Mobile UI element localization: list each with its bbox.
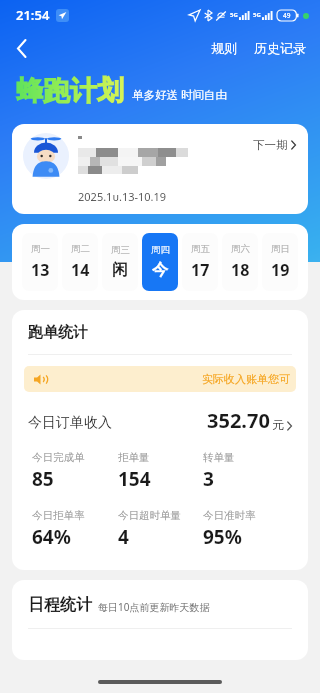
- staticText: 日程统计: [28, 595, 92, 615]
- button[interactable]: 周三: [102, 233, 138, 291]
- staticText: 周五: [191, 243, 210, 255]
- staticText: 转单量: [203, 451, 235, 464]
- staticText: 历史记录: [254, 40, 306, 56]
- staticText: 49: [283, 11, 291, 20]
- staticText: 13: [31, 259, 50, 281]
- button[interactable]: Back: [4, 30, 40, 66]
- staticText: 17: [191, 259, 210, 281]
- staticText: 21:54: [16, 6, 50, 24]
- button[interactable]: 今日订单收入: [28, 407, 292, 434]
- button[interactable]: 2025.1ᴜ.13-10.19: [12, 124, 308, 214]
- staticText: 今日完成单: [32, 451, 85, 464]
- staticText: 5G: [230, 11, 238, 19]
- button[interactable]: 下一期: [250, 135, 299, 155]
- staticText: 14: [71, 259, 90, 281]
- staticText: 跑单统计: [28, 323, 88, 342]
- staticText: 85: [32, 466, 54, 492]
- staticText: 18: [231, 259, 250, 281]
- staticText: 今日准时率: [203, 509, 256, 522]
- staticText: 元: [272, 417, 284, 432]
- staticText: 今日订单收入: [28, 414, 112, 432]
- staticText: 今日拒单率: [32, 509, 85, 522]
- staticText: 周一: [31, 243, 50, 255]
- staticText: 周二: [71, 243, 90, 255]
- staticText: 5G: [253, 11, 261, 19]
- staticText: 单多好送 时间自由: [132, 87, 227, 103]
- button[interactable]: 实际收入账单您可: [24, 366, 296, 392]
- button[interactable]: 周五: [182, 233, 218, 291]
- staticText: 95%: [203, 524, 242, 550]
- button[interactable]: 周二: [62, 233, 98, 291]
- staticText: 周日: [271, 243, 290, 255]
- staticText: 规则: [211, 40, 237, 56]
- button[interactable]: 周四: [142, 233, 178, 291]
- staticText: 实际收入账单您可: [202, 372, 290, 386]
- staticText: 2025.1ᴜ.13-10.19: [78, 189, 167, 204]
- staticText: 下一期: [253, 138, 288, 152]
- staticText: 352.70: [207, 407, 270, 434]
- button[interactable]: 周日: [262, 233, 298, 291]
- staticText: 4: [118, 524, 129, 550]
- staticText: 周三: [111, 244, 130, 256]
- button[interactable]: 周一: [22, 233, 58, 291]
- button[interactable]: 历史记录: [251, 35, 309, 61]
- button[interactable]: 规则: [206, 35, 242, 61]
- staticText: 64%: [32, 524, 71, 550]
- staticText: 19: [271, 259, 290, 281]
- staticText: 闲: [112, 260, 128, 280]
- staticText: 今: [152, 260, 168, 280]
- staticText: 蜂跑计划: [16, 74, 124, 108]
- button[interactable]: 周六: [222, 233, 258, 291]
- staticText: 周六: [231, 243, 250, 255]
- staticText: 每日10点前更新昨天数据: [98, 600, 210, 614]
- staticText: 拒单量: [118, 451, 150, 464]
- staticText: 3: [203, 466, 214, 492]
- staticText: 今日超时单量: [118, 509, 181, 522]
- staticText: 154: [118, 466, 151, 492]
- staticText: 周四: [151, 244, 170, 256]
